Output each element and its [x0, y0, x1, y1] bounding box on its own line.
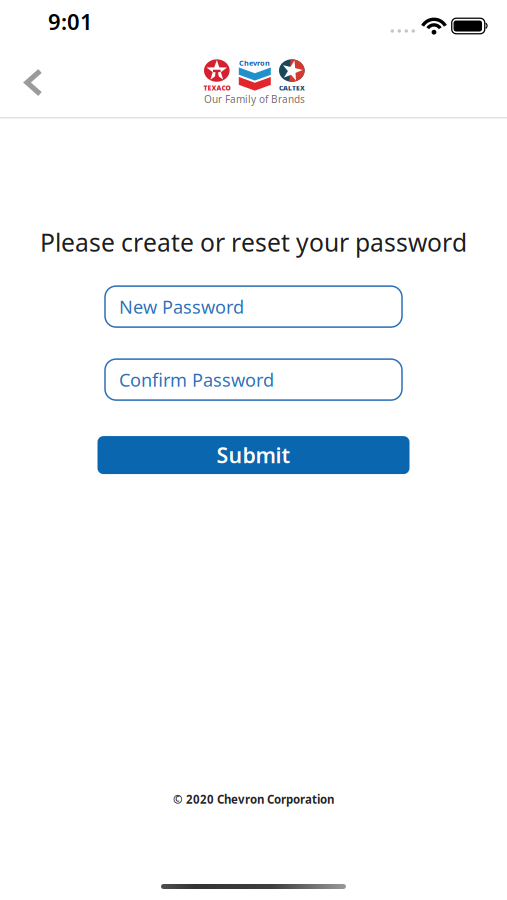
staticText: Submit	[216, 441, 290, 470]
staticText: Our Family of Brands	[204, 92, 305, 106]
button[interactable]: Back	[0, 60, 43, 104]
staticText: CALTEX	[279, 83, 305, 93]
staticText: Please create or reset your password	[40, 225, 467, 259]
button[interactable]: New Password	[105, 286, 402, 327]
staticText: TEXACO	[203, 83, 230, 93]
staticText: Confirm Password	[119, 367, 274, 392]
staticText: Chevron	[239, 58, 270, 68]
staticText: New Password	[119, 294, 244, 319]
staticText: 9:01	[48, 6, 93, 36]
button[interactable]: Confirm Password	[105, 359, 402, 400]
button[interactable]: Submit	[97, 436, 409, 474]
staticText: © 2020 Chevron Corporation	[173, 791, 334, 807]
